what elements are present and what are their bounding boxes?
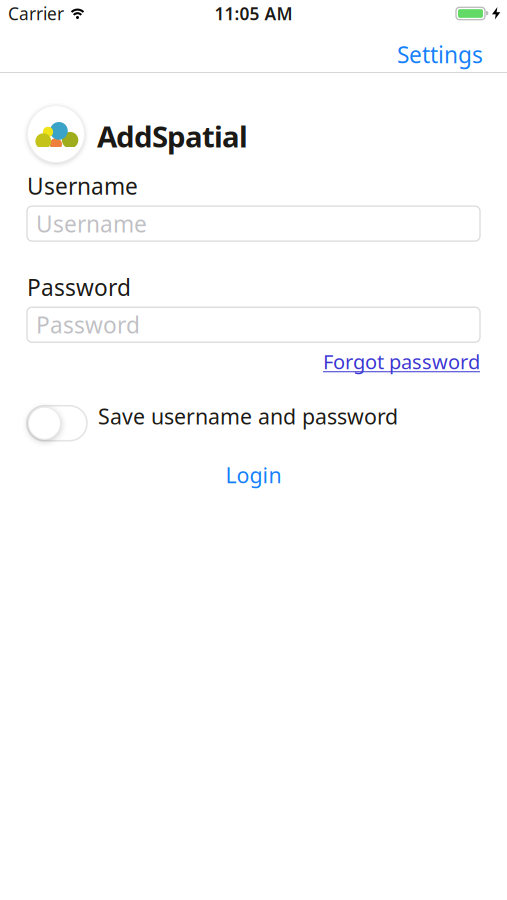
staticText: Login xyxy=(225,461,281,489)
button[interactable]: Save username and password xyxy=(27,406,87,441)
button[interactable]: Settings xyxy=(397,39,507,69)
staticText: Settings xyxy=(397,39,483,69)
staticText: Save username and password xyxy=(98,402,398,430)
staticText: Carrier xyxy=(8,2,64,25)
staticText: 11:05 AM xyxy=(214,2,292,25)
button[interactable]: Forgot password xyxy=(323,348,480,375)
button[interactable]: Username xyxy=(27,206,480,241)
staticText: Forgot password xyxy=(323,348,480,375)
staticText: Password xyxy=(27,272,131,302)
staticText: AddSpatial xyxy=(97,116,248,155)
staticText: Username xyxy=(36,209,147,239)
staticText: Password xyxy=(36,310,140,340)
button[interactable]: Login xyxy=(225,461,281,489)
staticText: Username xyxy=(27,171,138,201)
button[interactable]: Password xyxy=(27,307,480,342)
